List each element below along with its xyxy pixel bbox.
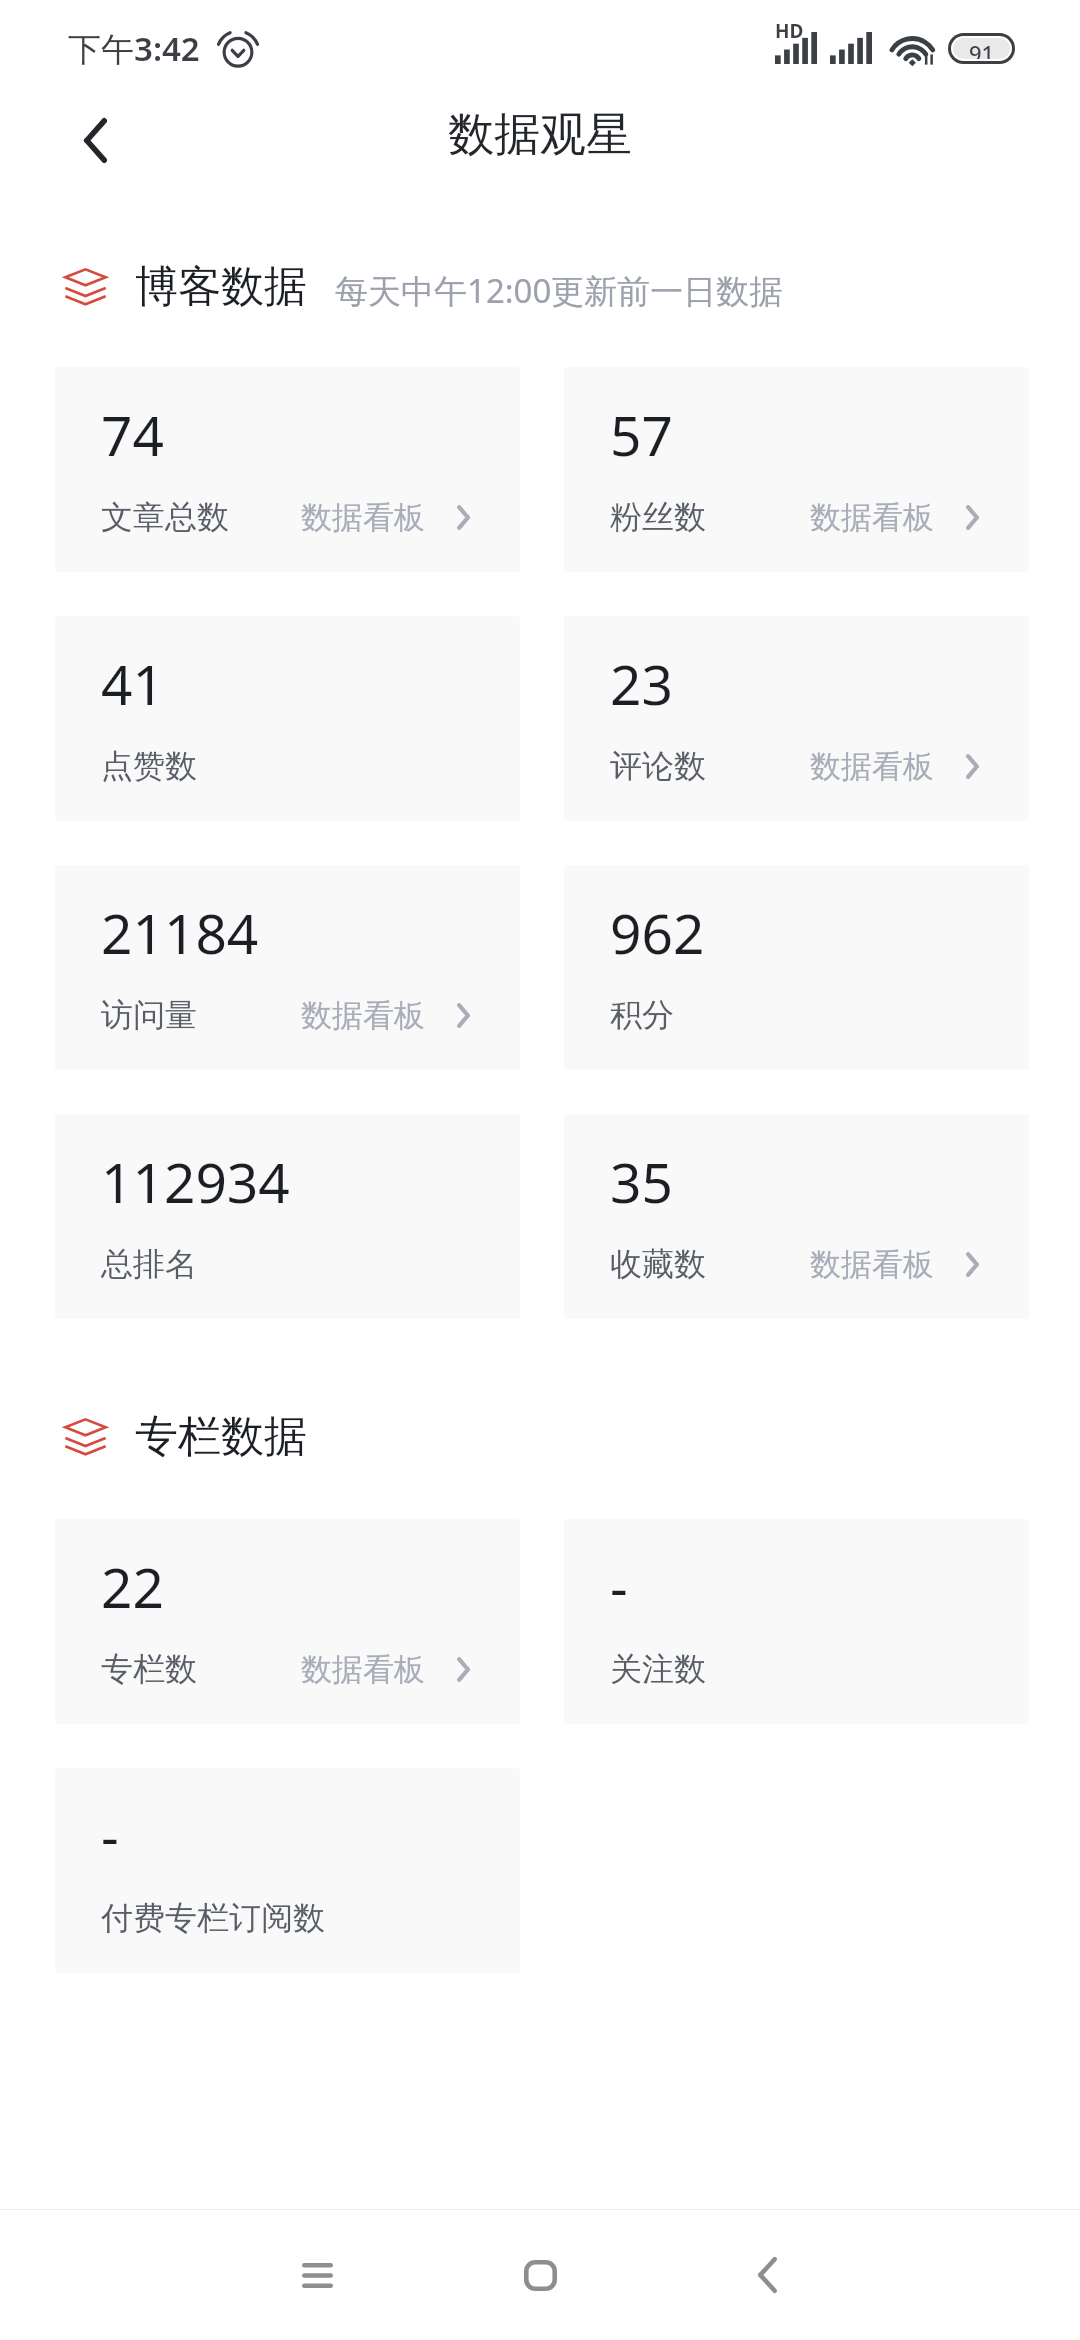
staticText: 专栏数: [101, 1649, 197, 1689]
staticText: 粉丝数: [610, 497, 706, 537]
button[interactable]: 74: [55, 367, 520, 572]
staticText: 23: [610, 646, 673, 721]
staticText: 数据看板: [301, 1650, 425, 1689]
staticText: 积分: [610, 995, 674, 1035]
staticText: 点赞数: [101, 746, 197, 786]
staticText: 数据看板: [810, 747, 934, 786]
staticText: 总排名: [101, 1244, 197, 1284]
staticText: 数据看板: [301, 996, 425, 1035]
button[interactable]: Home: [485, 2220, 595, 2330]
staticText: 每天中午12:00更新前一日数据: [335, 268, 783, 313]
staticText: 博客数据: [135, 260, 307, 314]
staticText: 收藏数: [610, 1244, 706, 1284]
button[interactable]: 数据看板: [301, 996, 470, 1035]
staticText: 访问量: [101, 995, 197, 1035]
button[interactable]: 21184: [55, 865, 520, 1070]
button[interactable]: 数据看板: [810, 747, 979, 786]
button[interactable]: 数据看板: [301, 1650, 470, 1689]
staticText: 评论数: [610, 746, 706, 786]
button[interactable]: 57: [564, 367, 1029, 572]
button[interactable]: Back: [712, 2220, 822, 2330]
button[interactable]: 22: [55, 1519, 520, 1724]
staticText: 数据看板: [301, 498, 425, 537]
staticText: 22: [101, 1549, 164, 1624]
staticText: 74: [101, 397, 164, 472]
button[interactable]: -: [55, 1768, 520, 1973]
staticText: 专栏数据: [135, 1410, 307, 1464]
staticText: 91: [969, 38, 995, 59]
button[interactable]: Recent apps: [262, 2220, 372, 2330]
staticText: 下午3:42: [68, 26, 200, 71]
staticText: 962: [610, 895, 705, 970]
staticText: 41: [101, 646, 164, 721]
staticText: 57: [610, 397, 673, 472]
button[interactable]: 数据看板: [810, 1245, 979, 1284]
staticText: 35: [610, 1144, 673, 1219]
staticText: 文章总数: [101, 497, 229, 537]
button[interactable]: 35: [564, 1114, 1029, 1319]
staticText: 数据观星: [448, 106, 632, 164]
staticText: 112934: [101, 1144, 290, 1219]
staticText: 数据看板: [810, 498, 934, 537]
button[interactable]: 962: [564, 865, 1029, 1070]
staticText: 付费专栏订阅数: [101, 1898, 325, 1938]
staticText: HD: [775, 18, 804, 44]
staticText: 21184: [101, 895, 259, 970]
staticText: 数据看板: [810, 1245, 934, 1284]
button[interactable]: 数据看板: [810, 498, 979, 537]
button[interactable]: -: [564, 1519, 1029, 1724]
button[interactable]: 数据看板: [301, 498, 470, 537]
button[interactable]: 41: [55, 616, 520, 821]
button[interactable]: Back: [63, 108, 127, 172]
button[interactable]: 112934: [55, 1114, 520, 1319]
button[interactable]: 23: [564, 616, 1029, 821]
staticText: -: [610, 1549, 628, 1624]
staticText: 关注数: [610, 1649, 706, 1689]
staticText: -: [101, 1798, 119, 1873]
